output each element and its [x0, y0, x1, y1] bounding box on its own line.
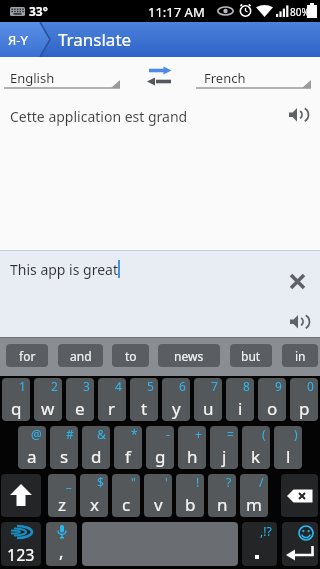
button[interactable]: a — [18, 426, 46, 469]
staticText: & — [97, 426, 106, 442]
button[interactable]: w — [34, 378, 62, 421]
button[interactable] — [147, 66, 173, 86]
staticText: 9 — [275, 378, 282, 394]
button[interactable]: Я-Y — [8, 31, 28, 49]
staticText: to — [125, 348, 137, 364]
staticText: h — [187, 445, 198, 468]
staticText: r — [108, 397, 116, 420]
staticText: 80% — [290, 5, 310, 19]
button[interactable]: u — [194, 378, 222, 421]
staticText: # — [66, 426, 74, 442]
staticText: 11:17 AM — [148, 3, 205, 21]
button[interactable]: 123 — [1, 522, 41, 566]
staticText: in — [295, 348, 306, 364]
button[interactable] — [82, 522, 238, 566]
button[interactable]: news — [158, 344, 220, 367]
staticText: f — [125, 445, 131, 468]
button[interactable] — [1, 474, 41, 517]
staticText: 123 — [7, 544, 35, 566]
button[interactable]: v — [144, 474, 172, 517]
button[interactable]: o — [258, 378, 286, 421]
staticText: 3 — [83, 378, 90, 394]
button[interactable]: ,!? — [242, 522, 277, 566]
staticText: q — [11, 397, 22, 420]
staticText: ! — [196, 474, 200, 490]
button[interactable] — [290, 274, 305, 289]
button[interactable]: l — [274, 426, 302, 469]
button[interactable]: x — [80, 474, 108, 517]
staticText: and — [70, 348, 92, 364]
staticText: 5 — [147, 378, 154, 394]
staticText: u — [203, 397, 214, 420]
button[interactable]: m — [240, 474, 268, 517]
staticText: m — [246, 493, 262, 516]
staticText: / — [259, 474, 264, 490]
staticText: _ — [66, 474, 72, 490]
staticText: + — [195, 426, 202, 442]
staticText: d — [91, 445, 102, 468]
button[interactable] — [282, 522, 318, 566]
staticText: i — [238, 397, 243, 420]
staticText: 8 — [243, 378, 250, 394]
button[interactable]: French — [196, 60, 311, 94]
staticText: = — [227, 426, 234, 442]
staticText: Translate — [58, 28, 132, 51]
staticText: French — [204, 69, 246, 87]
staticText: 1 — [19, 378, 26, 394]
button[interactable]: but — [230, 344, 272, 367]
staticText: k — [251, 445, 261, 468]
button[interactable]: p — [290, 378, 318, 421]
staticText: t — [141, 397, 148, 420]
staticText: n — [217, 493, 228, 516]
button[interactable]: k — [242, 426, 270, 469]
button[interactable]: j — [210, 426, 238, 469]
staticText: * — [131, 426, 138, 442]
staticText: ) — [294, 426, 298, 442]
staticText: 33° — [29, 3, 48, 19]
staticText: b — [185, 493, 196, 516]
button[interactable]: t — [130, 378, 158, 421]
button[interactable]: , — [46, 522, 77, 566]
staticText: e — [75, 397, 85, 420]
button[interactable] — [290, 315, 307, 329]
button[interactable]: to — [112, 344, 149, 367]
staticText: $ — [97, 474, 104, 490]
staticText: news — [174, 348, 204, 364]
staticText: ( — [262, 426, 266, 442]
button[interactable]: for — [6, 344, 48, 367]
staticText: This app is great — [10, 260, 118, 279]
staticText: c — [122, 493, 131, 516]
button[interactable]: and — [58, 344, 103, 367]
button[interactable]: n — [208, 474, 236, 517]
staticText: z — [58, 493, 66, 516]
button[interactable]: d — [82, 426, 110, 469]
staticText: l — [286, 445, 291, 468]
button[interactable] — [281, 474, 318, 517]
button[interactable] — [289, 108, 306, 122]
button[interactable]: h — [178, 426, 206, 469]
button[interactable]: in — [282, 344, 318, 367]
staticText: 0 — [307, 378, 314, 394]
button[interactable]: z — [48, 474, 76, 517]
staticText: g — [155, 445, 166, 468]
staticText: a — [27, 445, 37, 468]
staticText: y — [172, 397, 181, 420]
button[interactable]: g — [146, 426, 174, 469]
button[interactable]: q — [2, 378, 30, 421]
staticText: - — [166, 426, 170, 442]
button[interactable]: f — [114, 426, 142, 469]
staticText: v — [154, 493, 163, 516]
button[interactable]: English — [4, 60, 120, 94]
button[interactable]: b — [176, 474, 204, 517]
staticText: English — [10, 69, 55, 87]
button[interactable]: e — [66, 378, 94, 421]
staticText: ,!? — [260, 523, 272, 539]
button[interactable]: r — [98, 378, 126, 421]
staticText: ? — [226, 474, 232, 490]
button[interactable]: s — [50, 426, 78, 469]
staticText: but — [241, 348, 261, 364]
button[interactable]: i — [226, 378, 254, 421]
staticText: w — [41, 397, 55, 420]
button[interactable]: y — [162, 378, 190, 421]
button[interactable]: c — [112, 474, 140, 517]
